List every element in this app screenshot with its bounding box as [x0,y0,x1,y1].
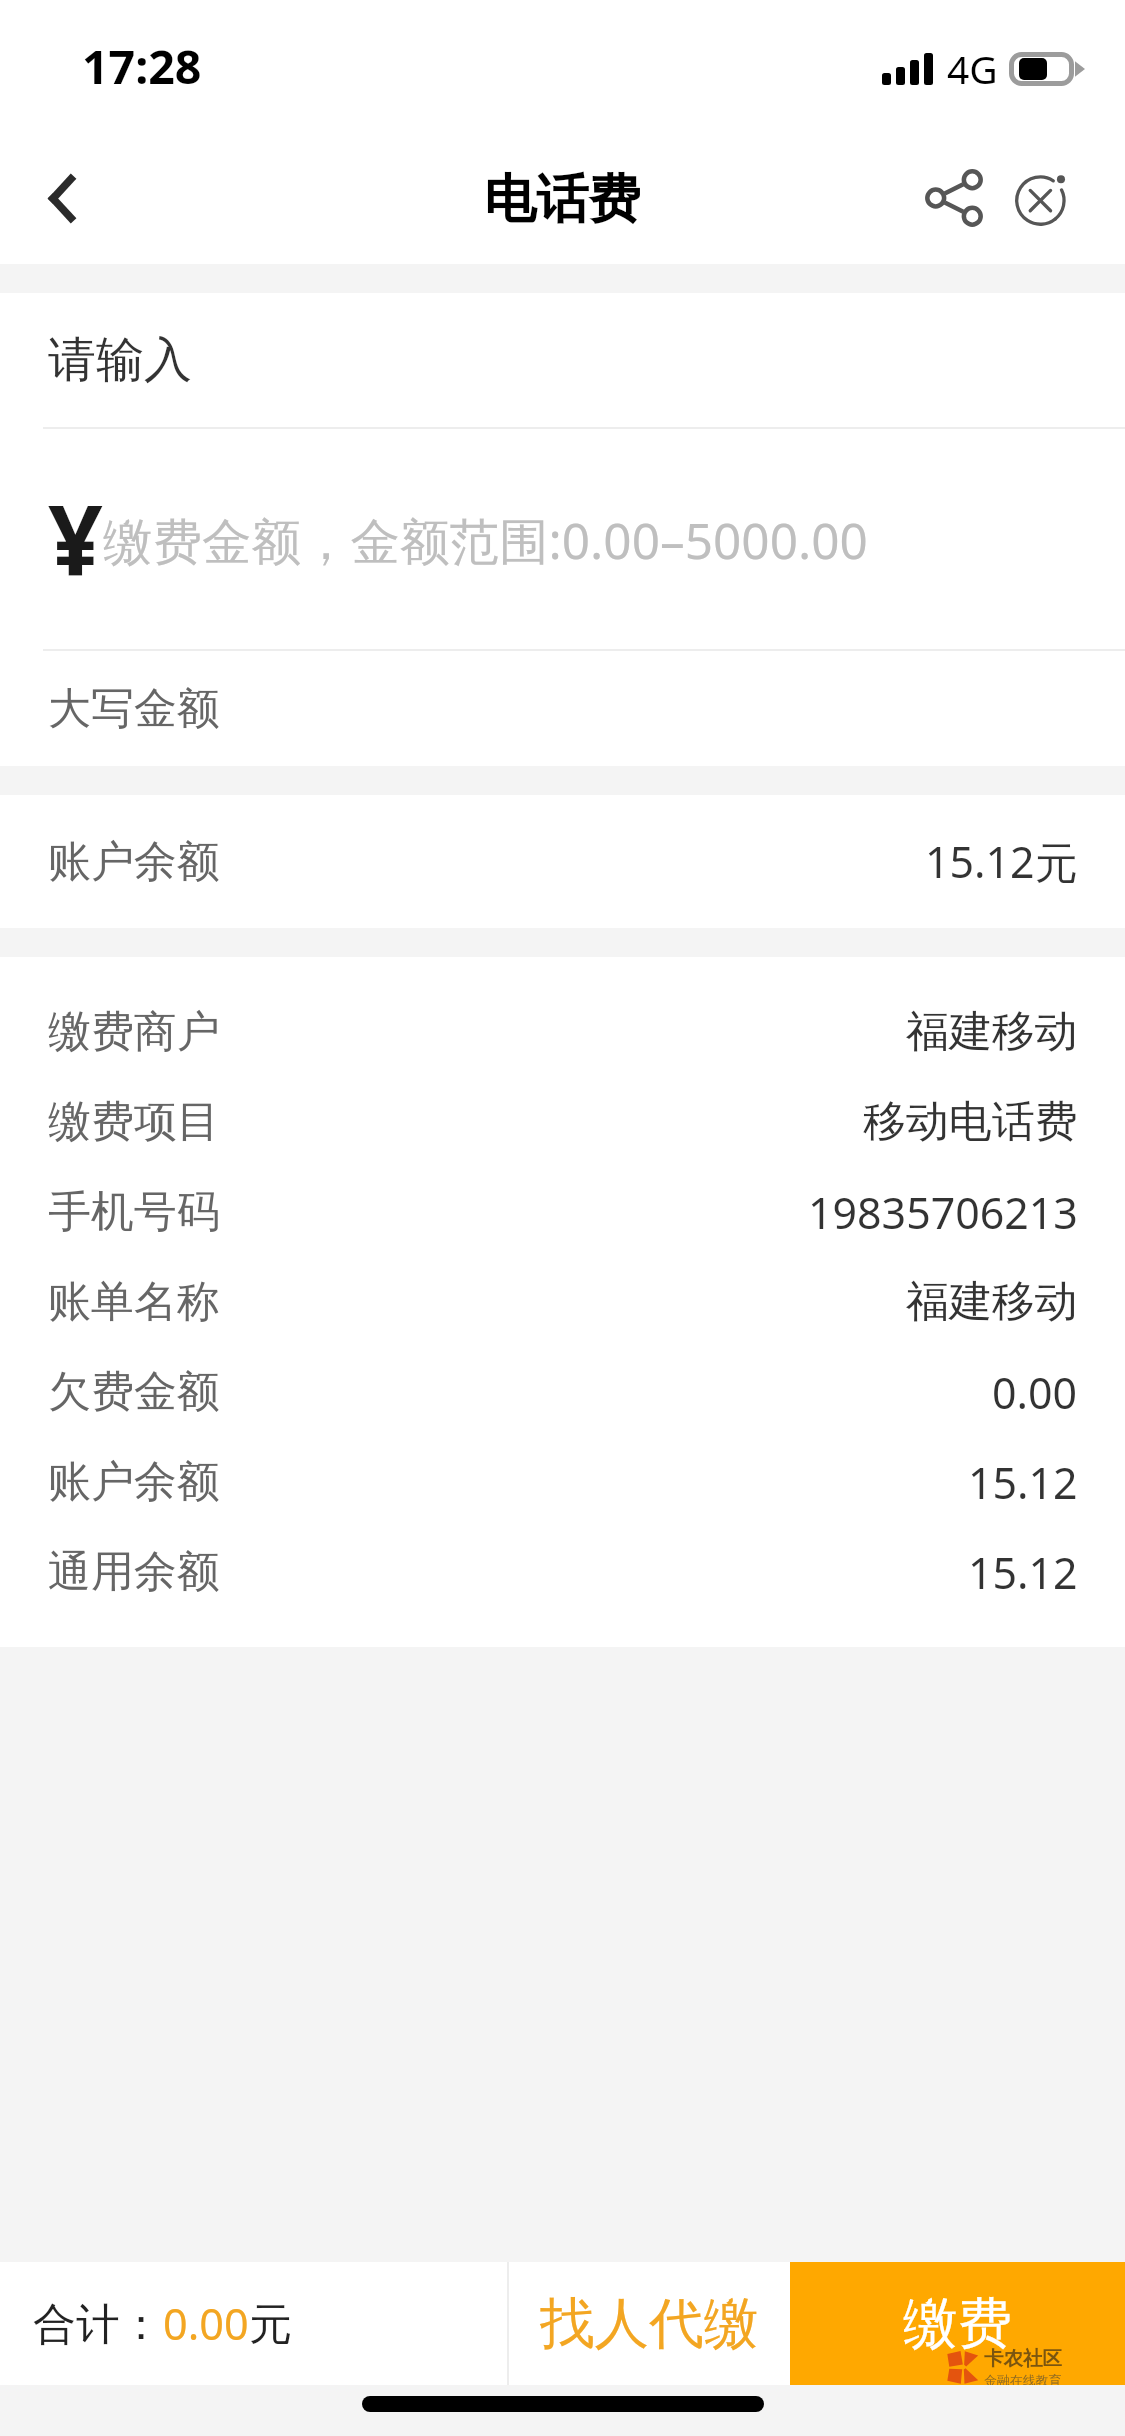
button[interactable]: 缴费 [790,2262,1125,2385]
staticText: 卡农社区 [984,2346,1062,2371]
staticText: ¥ [48,472,103,603]
button[interactable]: Back [0,132,132,264]
staticText: 15.12元 [925,832,1078,891]
staticText: 欠费金额 [48,1365,220,1419]
button[interactable]: 请输入 [0,293,1125,427]
staticText: 通用余额 [48,1545,220,1599]
staticText: 15.12 [968,1453,1078,1511]
button[interactable]: Share [888,132,1020,264]
button[interactable]: 找人代缴 [509,2262,790,2385]
staticText: 元 [249,2297,293,2351]
staticText: 大写金额 [48,682,220,736]
staticText: 合计： [33,2297,163,2351]
staticText: 手机号码 [48,1185,220,1239]
staticText: 账单名称 [48,1275,220,1329]
staticText: 账户余额 [48,1455,220,1509]
staticText: 缴费 [903,2289,1013,2358]
staticText: 福建移动 [906,1275,1078,1329]
staticText: 4G [947,42,998,95]
button[interactable]: Close [977,132,1109,264]
staticText: 0.00 [992,1363,1078,1421]
staticText: 福建移动 [906,1005,1078,1059]
staticText: 19835706213 [808,1183,1078,1241]
staticText: 金融在线教育 [984,2373,1062,2389]
staticText: 找人代缴 [540,2289,759,2358]
staticText: 缴费金额，金额范围:0.00–5000.00 [103,506,868,574]
staticText: 账户余额 [48,835,220,889]
staticText: 移动电话费 [863,1095,1078,1149]
button[interactable]: 账户余额 [0,795,1125,928]
staticText: 缴费项目 [48,1095,220,1149]
staticText: 电话费 [484,167,641,233]
staticText: 0.00 [163,2294,249,2353]
staticText: 15.12 [968,1543,1078,1601]
button[interactable]: ¥ [0,429,1125,649]
staticText: 17:28 [82,34,202,97]
staticText: 缴费商户 [48,1005,220,1059]
button[interactable]: 大写金额 [0,651,1125,766]
staticText: 请输入 [48,330,192,390]
